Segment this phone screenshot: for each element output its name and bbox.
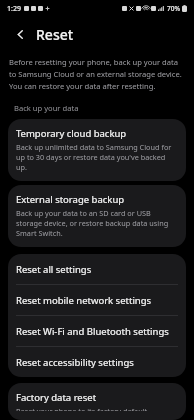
button[interactable]: Back — [9, 23, 31, 45]
button[interactable]: Temporary cloud backup — [8, 119, 186, 181]
button[interactable]: Reset accessibility settings — [8, 347, 186, 377]
staticText: Back up your data — [14, 103, 79, 113]
staticText: Factory data reset — [16, 391, 97, 404]
button[interactable]: Reset Wi-Fi and Bluetooth settings — [8, 316, 186, 346]
staticText: Back up unlimited data to Samsung Cloud … — [16, 142, 177, 172]
staticText: Reset accessibility settings — [16, 356, 134, 369]
staticText: Before resetting your phone, back up you… — [9, 57, 186, 92]
staticText: Back up your data to an SD card or USB s… — [16, 208, 177, 238]
staticText: 1:29 — [7, 4, 21, 14]
staticText: Reset Wi-Fi and Bluetooth settings — [16, 325, 169, 338]
staticText: Temporary cloud backup — [16, 127, 127, 140]
button[interactable]: External storage backup — [8, 185, 186, 247]
staticText: Reset your phone to its factory default … — [16, 406, 177, 411]
staticText: Reset — [36, 25, 74, 44]
button[interactable]: Reset all settings — [8, 254, 186, 284]
button[interactable]: Factory data reset — [8, 383, 186, 420]
staticText: 70% — [167, 4, 180, 13]
button[interactable]: Reset mobile network settings — [8, 285, 186, 315]
staticText: Reset mobile network settings — [16, 294, 152, 307]
staticText: External storage backup — [16, 193, 125, 206]
staticText: Reset all settings — [16, 263, 92, 276]
